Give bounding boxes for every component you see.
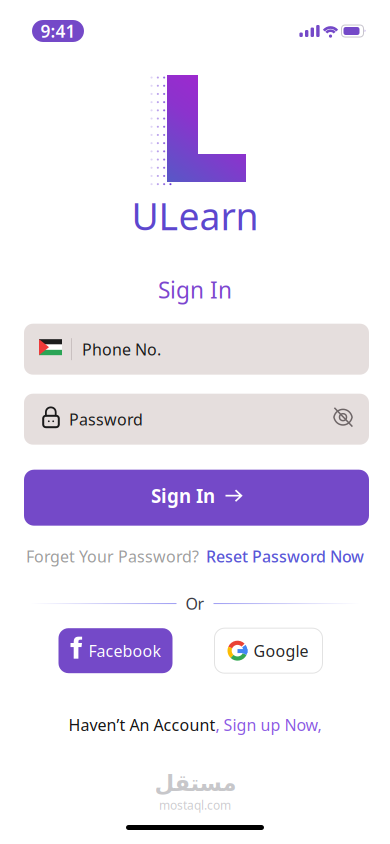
staticText: 9:41: [40, 19, 75, 42]
staticText: , Sign up Now,: [215, 714, 321, 735]
staticText: Sign In: [158, 275, 232, 305]
button[interactable]: Google: [214, 628, 322, 673]
button[interactable]: Reset Password Now: [206, 546, 364, 567]
button[interactable]: Show password: [325, 397, 361, 441]
staticText: Forget Your Password?: [26, 546, 199, 567]
button[interactable]: Sign In: [24, 470, 369, 526]
staticText: ULearn: [131, 191, 258, 241]
button[interactable]: , Sign up Now,: [215, 714, 321, 735]
staticText: mostaql.com: [159, 797, 231, 813]
staticText: مستقل: [154, 770, 236, 796]
staticText: Reset Password Now: [206, 546, 364, 567]
staticText: Password: [69, 409, 143, 430]
staticText: Phone No.: [82, 339, 161, 360]
staticText: Google: [253, 640, 308, 661]
staticText: Haven’t An Account: [68, 714, 215, 735]
button[interactable]: Facebook: [58, 628, 172, 673]
staticText: Sign In: [151, 483, 215, 508]
staticText: Facebook: [88, 640, 161, 661]
staticText: Or: [185, 593, 204, 614]
